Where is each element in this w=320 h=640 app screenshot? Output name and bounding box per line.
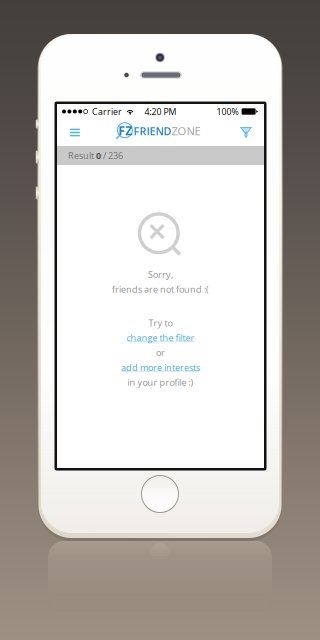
staticText: ZONE xyxy=(172,123,201,139)
staticText: 0 xyxy=(96,149,101,162)
button[interactable]: Menu xyxy=(62,119,88,146)
staticText: 100% xyxy=(217,105,239,117)
button[interactable]: Filter xyxy=(233,119,259,146)
staticText: Try to xyxy=(148,317,172,329)
button[interactable]: add more interests xyxy=(57,360,264,375)
staticText: FZ xyxy=(118,122,132,139)
staticText: change the filter xyxy=(126,332,194,344)
staticText: or xyxy=(156,346,165,359)
staticText: friends are not found :( xyxy=(112,283,209,295)
staticText: 4:20 PM xyxy=(144,105,176,117)
staticText: FRIEND xyxy=(134,124,172,138)
staticText: in your profile :) xyxy=(127,376,193,388)
staticText: Result xyxy=(68,149,96,162)
staticText: Sorry, xyxy=(148,268,173,280)
button[interactable]: change the filter xyxy=(57,330,264,345)
staticText: add more interests xyxy=(121,361,200,373)
staticText: / 236 xyxy=(101,149,123,162)
staticText: Carrier xyxy=(92,105,122,117)
